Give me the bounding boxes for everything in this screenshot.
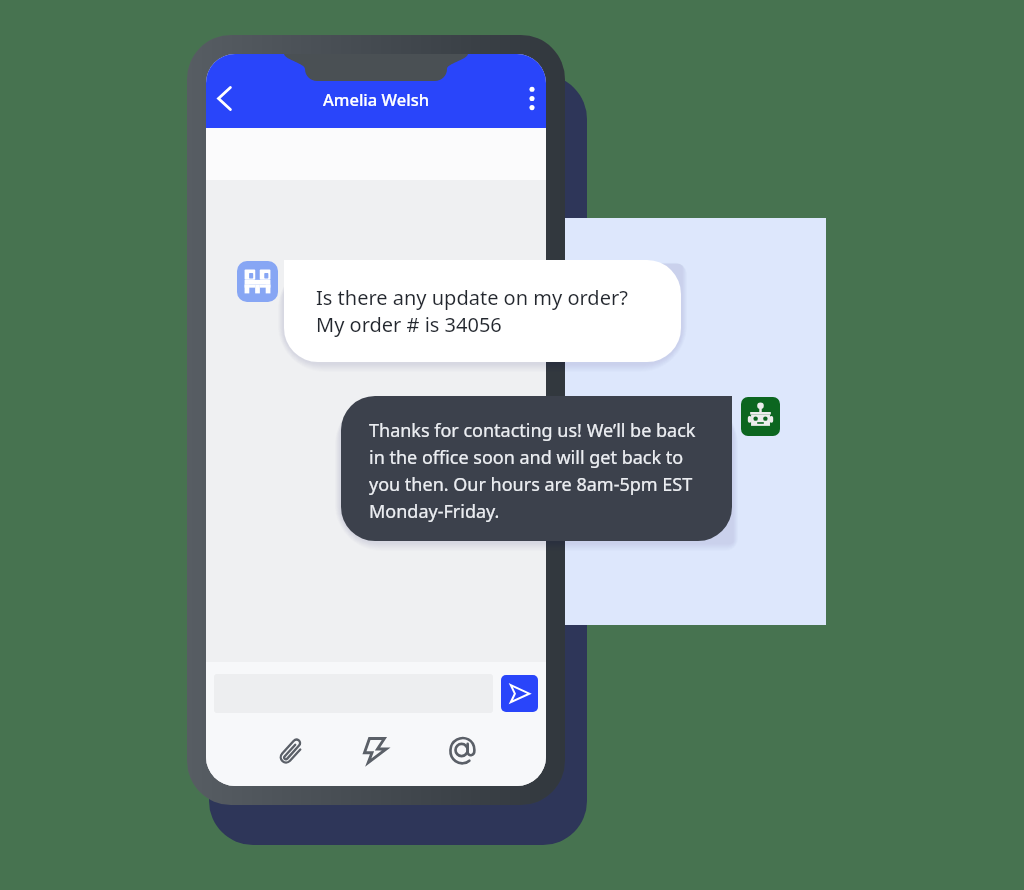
button[interactable]: Contact avatar	[237, 261, 278, 302]
button[interactable]: More options	[514, 80, 546, 116]
button[interactable]: Quick replies	[355, 729, 397, 771]
staticText: Thanks for contacting us! We’ll be back …	[369, 418, 696, 523]
button[interactable]: Mention	[441, 729, 483, 771]
staticText: Is there any update on my order? My orde…	[316, 284, 628, 338]
button[interactable]: Is there any update on my order? My orde…	[284, 260, 681, 362]
staticText: Amelia Welsh	[206, 88, 546, 110]
button[interactable]: Thanks for contacting us! We’ll be back …	[341, 396, 732, 541]
button[interactable]: Bot avatar	[741, 397, 780, 436]
button[interactable]: Send	[501, 675, 538, 712]
button[interactable]: Back	[208, 80, 244, 116]
button[interactable]: Attach file	[269, 729, 311, 771]
